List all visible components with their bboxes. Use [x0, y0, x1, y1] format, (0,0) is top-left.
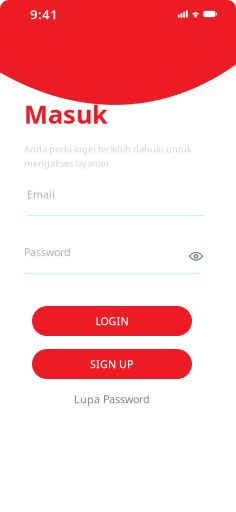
button[interactable]: SIGN UP — [32, 349, 192, 379]
staticText: Email — [27, 187, 55, 201]
button[interactable]: Lupa Password — [32, 392, 192, 406]
staticText: 9:41 — [30, 5, 58, 23]
button[interactable]: Show password — [185, 248, 207, 264]
staticText: Lupa Password — [74, 392, 150, 406]
staticText: Password — [24, 245, 71, 259]
staticText: Anda perlu login terlebih dahulu untuk m… — [24, 143, 192, 169]
staticText: LOGIN — [95, 314, 128, 328]
staticText: SIGN UP — [90, 357, 134, 371]
button[interactable]: LOGIN — [32, 306, 192, 336]
staticText: Masuk — [24, 97, 108, 131]
